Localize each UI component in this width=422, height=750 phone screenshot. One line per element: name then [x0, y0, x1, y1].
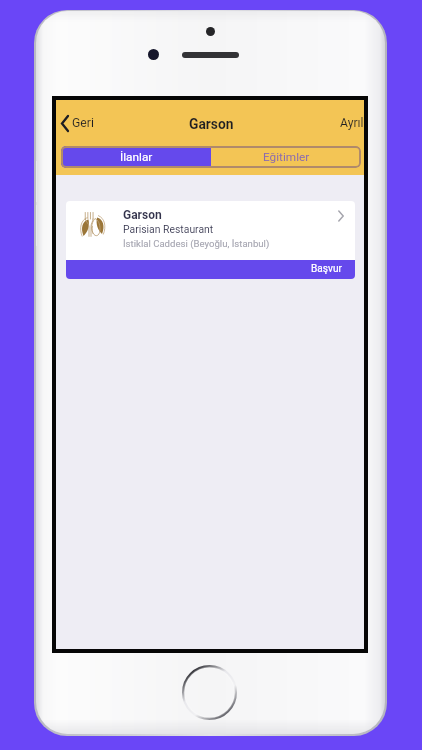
- button[interactable]: Başvur: [66, 260, 355, 279]
- staticText: Başvur: [311, 263, 342, 275]
- staticText: İstiklal Caddesi (Beyoğlu, İstanbul): [123, 238, 270, 249]
- staticText: Garson: [189, 116, 234, 132]
- button[interactable]: Ayrıl: [332, 109, 364, 137]
- staticText: İlanlar: [120, 150, 153, 164]
- staticText: Parisian Restaurant: [123, 223, 214, 235]
- button[interactable]: Eğitimler: [211, 146, 361, 168]
- button[interactable]: Home: [182, 665, 237, 720]
- staticText: Eğitimler: [263, 150, 310, 164]
- staticText: Garson: [123, 208, 162, 222]
- other: Details: [338, 211, 344, 221]
- staticText: Geri: [72, 116, 94, 130]
- button[interactable]: İlanlar: [61, 146, 211, 168]
- button[interactable]: Geri: [56, 108, 102, 138]
- button[interactable]: Garson: [66, 201, 355, 260]
